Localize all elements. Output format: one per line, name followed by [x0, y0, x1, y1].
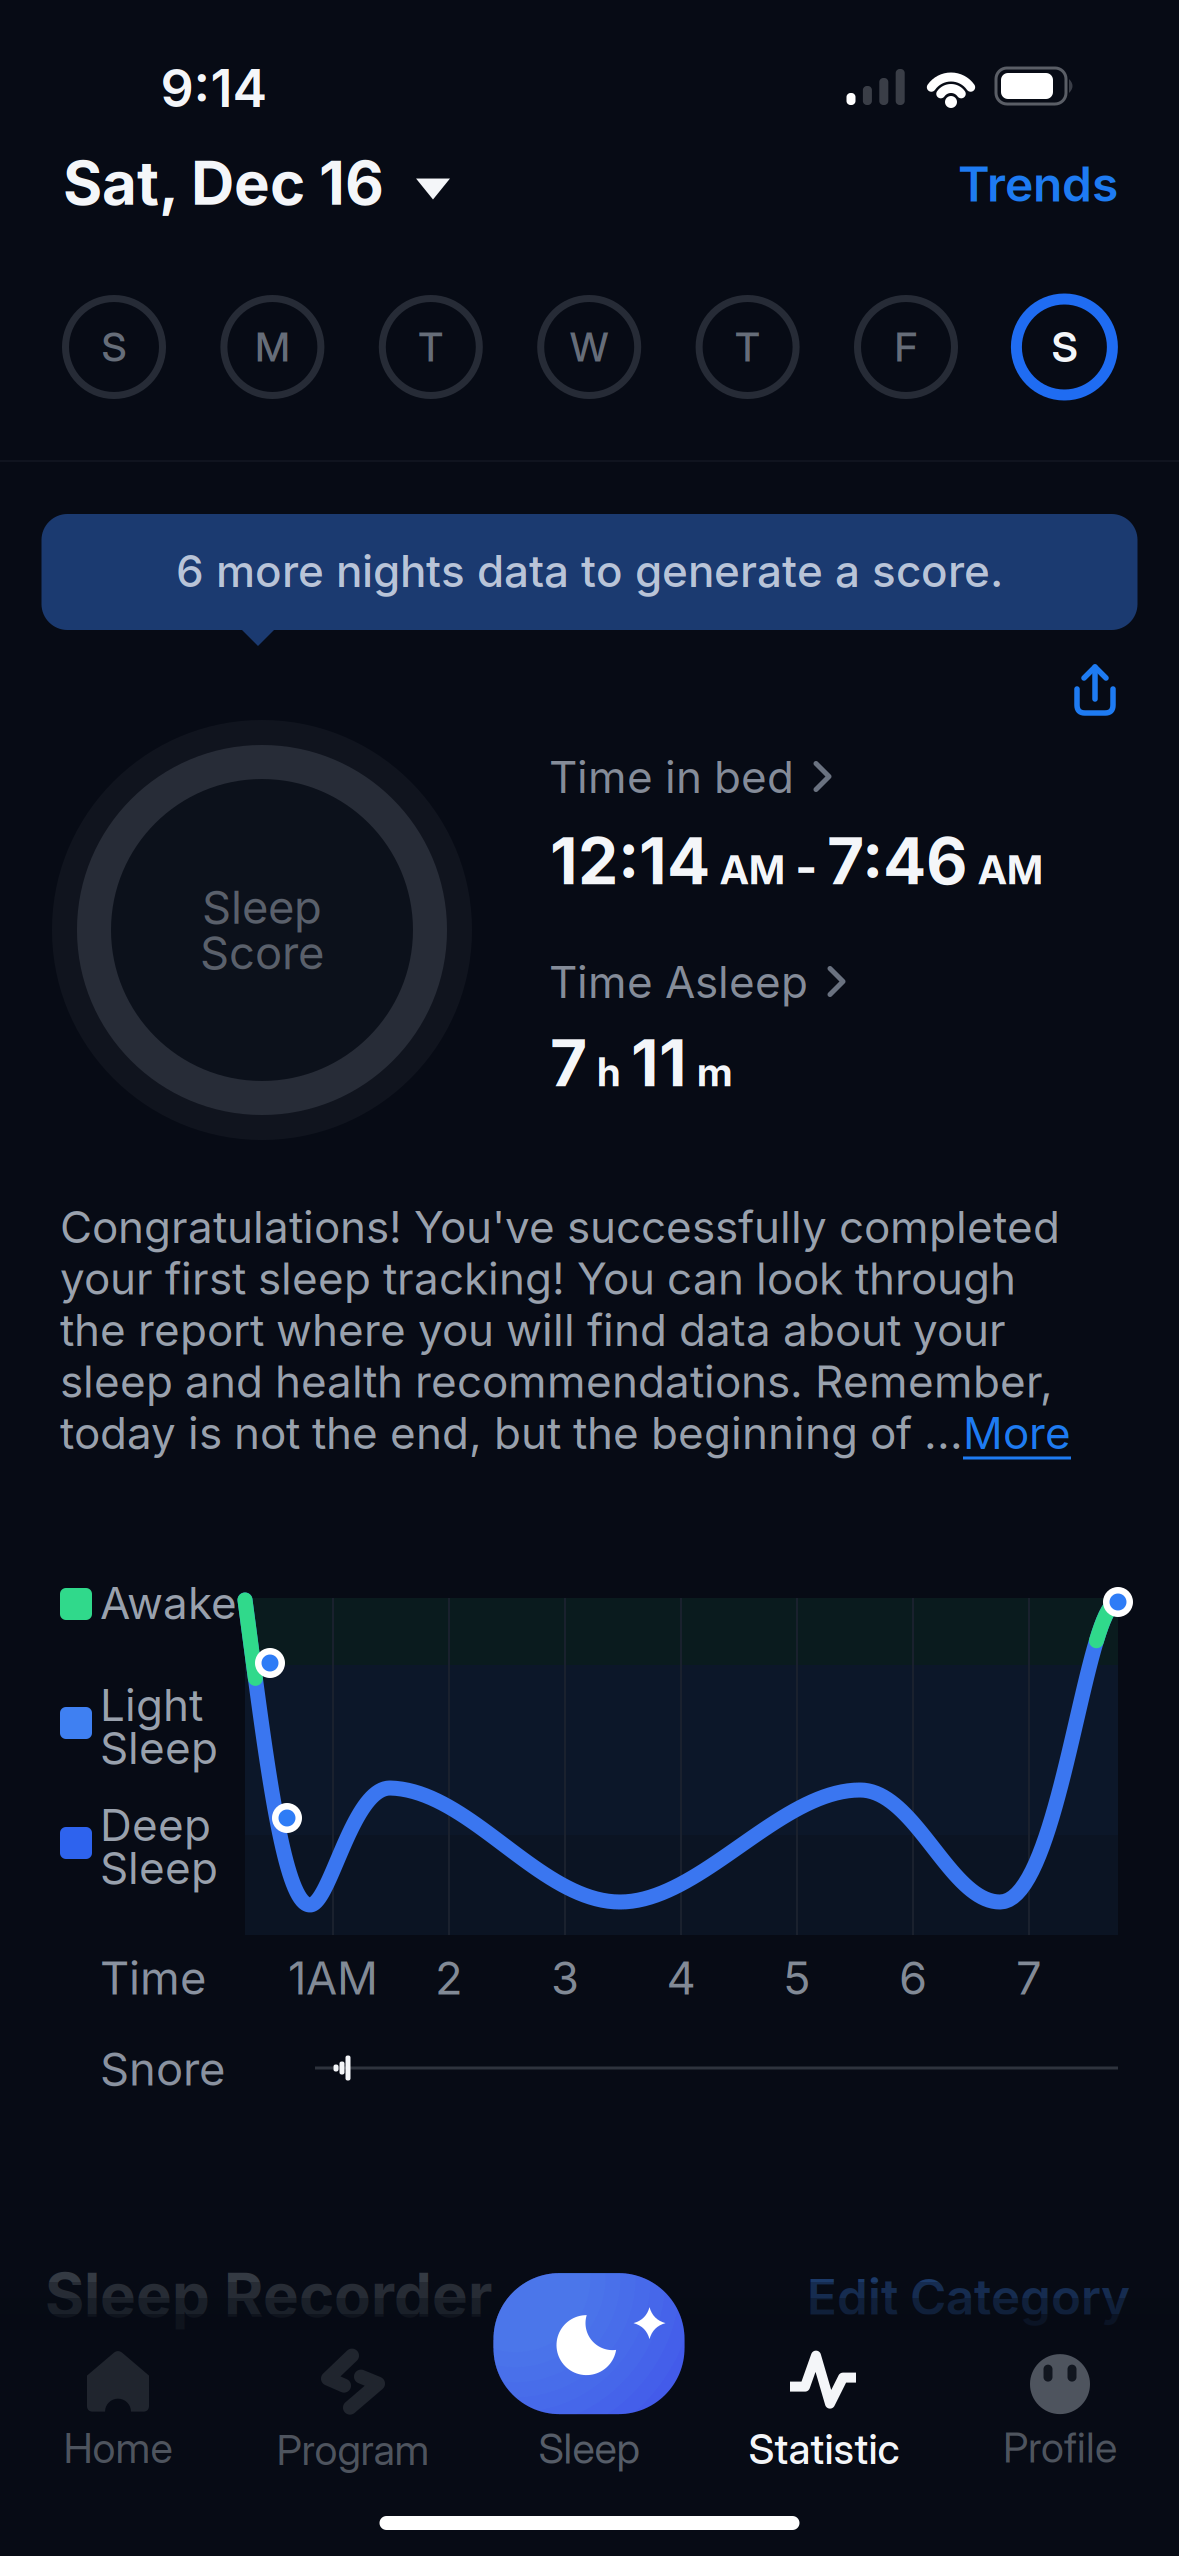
- staticText: Sleep: [100, 1722, 218, 1774]
- staticText: 6: [899, 1951, 927, 2005]
- staticText: today is not the end, but the beginning …: [60, 1407, 963, 1459]
- button[interactable]: Trends: [718, 156, 1118, 212]
- button[interactable]: Home: [63, 2352, 172, 2472]
- button[interactable]: S: [60, 293, 168, 401]
- staticText: Congratulations! You've successfully com…: [60, 1201, 1060, 1253]
- button[interactable]: Profile: [1003, 2354, 1117, 2472]
- button[interactable]: Edit Category: [730, 2268, 1130, 2326]
- button[interactable]: Sleep: [493, 2273, 684, 2473]
- staticText: Awake: [100, 1577, 237, 1629]
- staticText: 5: [783, 1951, 811, 2005]
- button[interactable]: T: [377, 293, 485, 401]
- staticText: F: [894, 323, 917, 371]
- staticText: Program: [276, 2426, 429, 2474]
- staticText: T: [735, 323, 760, 371]
- staticText: Score: [200, 926, 324, 979]
- staticText: 7: [550, 1025, 587, 1101]
- staticText: AM: [720, 846, 785, 893]
- button[interactable]: S: [1010, 293, 1118, 401]
- staticText: sleep and health recommendations. Rememb…: [60, 1355, 1053, 1407]
- staticText: Light: [100, 1679, 203, 1731]
- button[interactable]: Program: [276, 2350, 429, 2474]
- button[interactable]: Statistic: [748, 2351, 899, 2473]
- staticText: M: [255, 323, 290, 371]
- staticText: 7: [1016, 1951, 1042, 2005]
- staticText: Time: [100, 1951, 206, 2005]
- staticText: Sleep: [538, 2424, 639, 2473]
- staticText: W: [570, 323, 609, 371]
- button[interactable]: More: [963, 1407, 1071, 1459]
- staticText: S: [1051, 323, 1077, 371]
- staticText: Sat, Dec 16: [63, 148, 384, 218]
- staticText: m: [697, 1048, 732, 1095]
- button[interactable]: F: [852, 293, 960, 401]
- staticText: Sleep: [202, 880, 322, 934]
- staticText: Profile: [1003, 2423, 1117, 2472]
- staticText: 12:14: [550, 823, 710, 899]
- staticText: 1AM: [288, 1951, 378, 2005]
- staticText: 4: [666, 1951, 695, 2005]
- staticText: Snore: [100, 2042, 225, 2096]
- staticText: More: [963, 1407, 1071, 1459]
- staticText: 11: [631, 1025, 687, 1101]
- staticText: 9:14: [160, 57, 267, 119]
- button[interactable]: M: [218, 293, 326, 401]
- staticText: the report where you will find data abou…: [60, 1304, 1006, 1356]
- staticText: Trends: [958, 156, 1118, 212]
- staticText: Home: [63, 2424, 172, 2472]
- button[interactable]: Time in bed: [549, 751, 1049, 803]
- staticText: 6 more nights data to generate a score.: [176, 545, 1003, 597]
- staticText: Sleep: [100, 1842, 218, 1894]
- staticText: AM: [978, 846, 1043, 893]
- staticText: your first sleep tracking! You can look …: [60, 1252, 1016, 1304]
- staticText: -: [795, 838, 817, 895]
- staticText: 3: [551, 1951, 579, 2005]
- staticText: S: [101, 323, 126, 371]
- staticText: Sleep Recorder: [45, 2260, 492, 2330]
- staticText: Time Asleep: [549, 956, 808, 1008]
- staticText: Time in bed: [549, 751, 794, 803]
- staticText: 7:46: [827, 823, 968, 899]
- button[interactable]: Time Asleep: [549, 956, 1049, 1008]
- button[interactable]: W: [535, 293, 643, 401]
- button[interactable]: Sat, Dec 16: [63, 148, 763, 218]
- button[interactable]: Share: [1071, 665, 1119, 717]
- staticText: Deep: [100, 1799, 211, 1851]
- staticText: 2: [435, 1951, 463, 2005]
- button[interactable]: T: [694, 293, 802, 401]
- staticText: T: [418, 323, 443, 371]
- staticText: Edit Category: [807, 2268, 1130, 2326]
- staticText: h: [597, 1048, 621, 1095]
- staticText: Statistic: [748, 2425, 899, 2473]
